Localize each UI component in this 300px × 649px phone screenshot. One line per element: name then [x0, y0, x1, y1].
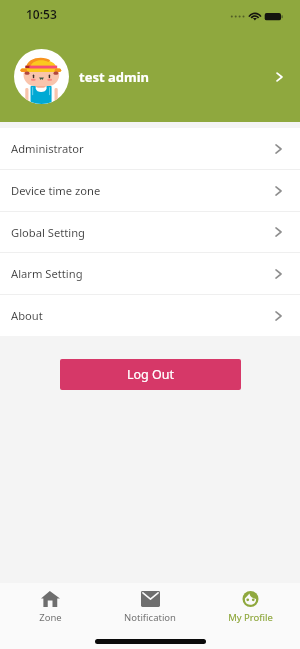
button[interactable]: Device time zone — [0, 170, 300, 211]
staticText: Global Setting — [11, 225, 85, 240]
staticText: Administrator — [11, 141, 84, 156]
staticText: Log Out — [127, 366, 175, 383]
button[interactable]: test admin — [0, 49, 300, 104]
button[interactable]: Alarm Setting — [0, 253, 300, 294]
button[interactable]: Global Setting — [0, 212, 300, 252]
button[interactable]: My Profile — [200, 587, 300, 628]
staticText: Alarm Setting — [11, 266, 83, 281]
button[interactable]: Administrator — [0, 128, 300, 169]
staticText: Notification — [124, 611, 176, 624]
button[interactable]: Zone — [0, 587, 100, 628]
button[interactable]: Log Out — [60, 359, 241, 390]
staticText: test admin — [79, 68, 149, 86]
staticText: Zone — [39, 611, 62, 624]
button[interactable]: Notification — [100, 587, 200, 628]
staticText: 10:53 — [26, 6, 57, 22]
staticText: About — [11, 308, 43, 323]
staticText: My Profile — [228, 611, 273, 624]
staticText: Device time zone — [11, 183, 101, 198]
button[interactable]: About — [0, 295, 300, 336]
